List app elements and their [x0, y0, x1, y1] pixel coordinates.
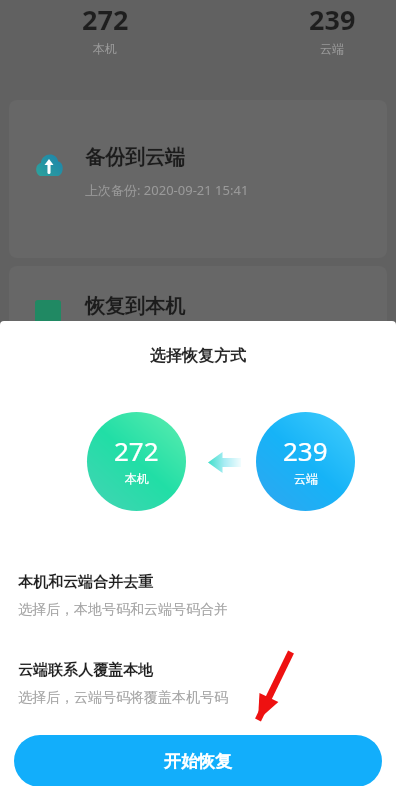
button[interactable]: 云端联系人覆盖本地 — [0, 661, 396, 707]
staticText: 开始恢复 — [164, 751, 232, 772]
staticText: 本机 — [125, 471, 149, 486]
staticText: 272 — [114, 433, 159, 468]
staticText: 本机和云端合并去重 — [18, 573, 153, 592]
button[interactable]: Backup to cloud — [9, 100, 387, 258]
staticText: 239 — [309, 1, 356, 38]
staticText: 选择恢复方式 — [0, 346, 396, 366]
staticText: 239 — [283, 433, 328, 468]
button[interactable]: 本机和云端合并去重 — [0, 573, 396, 619]
staticText: 恢复到本机 — [85, 294, 185, 319]
staticText: 本机 — [93, 41, 117, 56]
staticText: 云端联系人覆盖本地 — [18, 661, 153, 680]
button[interactable]: 恢复到本机 — [9, 266, 387, 386]
other: Backup to cloud — [35, 150, 63, 178]
staticText: 云端 — [320, 41, 344, 56]
staticText: 272 — [82, 1, 129, 38]
button[interactable]: 239 — [256, 412, 355, 511]
staticText: 上次备份: 2020-09-21 15:41 — [85, 181, 249, 199]
staticText: 备份到云端 — [85, 145, 185, 170]
staticText: 选择后，本地号码和云端号码合并 — [18, 601, 228, 619]
staticText: 选择后，云端号码将覆盖本机号码 — [18, 689, 228, 707]
button[interactable]: 开始恢复 — [14, 735, 382, 786]
staticText: 云端 — [294, 471, 318, 486]
button[interactable]: 272 — [87, 412, 186, 511]
